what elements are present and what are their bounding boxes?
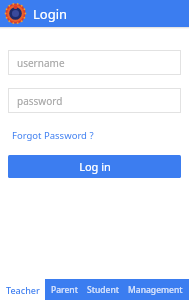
staticText: Log in	[79, 159, 111, 174]
other: App logo	[5, 3, 26, 24]
button[interactable]: username	[8, 50, 181, 75]
button[interactable]: Student	[84, 279, 122, 300]
button[interactable]: Teacher	[0, 279, 45, 300]
button[interactable]: Forgot Password ?	[10, 127, 96, 144]
staticText: Teacher	[6, 284, 40, 296]
staticText: username	[17, 56, 65, 70]
staticText: Parent	[51, 284, 78, 296]
staticText: Management	[128, 284, 183, 296]
staticText: password	[17, 94, 63, 108]
staticText: Student	[87, 284, 119, 296]
staticText: Forgot Password ?	[12, 129, 94, 142]
staticText: Login	[33, 5, 68, 23]
button[interactable]: Parent	[48, 279, 81, 300]
button[interactable]: password	[8, 88, 181, 113]
button[interactable]: Log in	[8, 155, 181, 178]
button[interactable]: Management	[125, 279, 186, 300]
